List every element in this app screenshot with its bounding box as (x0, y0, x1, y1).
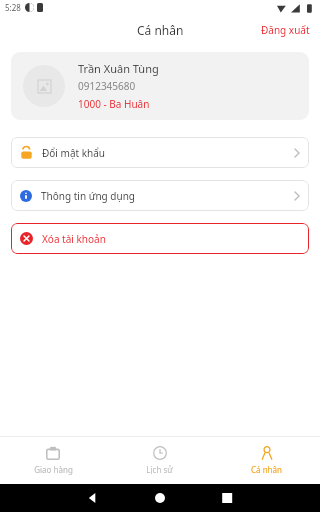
button[interactable]: Lịch sử (106, 437, 213, 484)
button[interactable]: Đăng xuất (251, 18, 320, 42)
staticText: Lịch sử (146, 464, 173, 475)
staticText: Thông tin ứng dụng (41, 189, 136, 203)
button[interactable]: Xóa tài khoản (11, 223, 309, 254)
button[interactable]: Đổi mật khẩu (11, 137, 309, 168)
button[interactable]: Giao hàng (0, 437, 106, 484)
button[interactable]: Trần Xuân Tùng (11, 52, 309, 120)
staticText: Trần Xuân Tùng (78, 61, 159, 76)
button[interactable]: Cá nhân (213, 437, 320, 484)
staticText: Giao hàng (34, 464, 73, 475)
staticText: Cá nhân (137, 22, 184, 38)
staticText: 0912345680 (78, 79, 136, 93)
staticText: Cá nhân (251, 464, 282, 475)
button[interactable]: Thông tin ứng dụng (11, 180, 309, 211)
staticText: Đăng xuất (261, 23, 310, 37)
staticText: 1000 - Ba Huân (78, 97, 150, 111)
staticText: 5:28 (5, 2, 21, 13)
staticText: Xóa tài khoản (42, 232, 106, 246)
staticText: Đổi mật khẩu (42, 146, 106, 160)
